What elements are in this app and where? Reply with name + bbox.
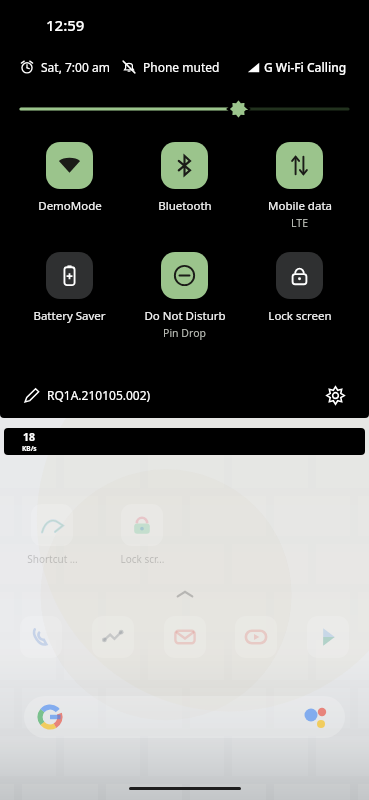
staticText: Phone muted [143,59,220,75]
button[interactable]: Lock screen [242,252,357,324]
button[interactable]: Brightness [21,96,348,122]
button[interactable]: Mobile data [242,142,357,230]
button[interactable]: Lock scr… [121,504,163,546]
staticText: 12:59 [46,15,85,35]
staticText: Do Not Disturb [144,308,226,324]
staticText: KB/s [22,444,37,453]
staticText: G Wi-Fi Calling [264,59,347,75]
button[interactable]: App [307,616,349,658]
staticText: Lock scr… [120,552,165,566]
button[interactable]: App [235,616,277,658]
staticText: Lock screen [268,308,332,324]
button[interactable]: Battery Saver [12,252,127,324]
button[interactable]: 18 [4,428,365,455]
staticText: 18 [23,430,36,444]
button[interactable]: Settings [321,381,349,409]
button[interactable]: Shortcut … [31,504,73,546]
button[interactable]: Edit tiles [18,382,44,408]
staticText: Pin Drop [163,326,206,340]
button[interactable]: DemoMode [12,142,127,214]
staticText: Shortcut … [27,552,78,566]
staticText: DemoMode [38,198,102,214]
staticText: Bluetooth [158,198,212,214]
button[interactable]: App [164,616,206,658]
staticText: RQ1A.210105.002) [47,387,151,403]
staticText: LTE [291,216,308,230]
staticText: Mobile data [268,198,332,214]
button[interactable]: Bluetooth [127,142,242,214]
button[interactable]: App [20,616,62,658]
staticText: Battery Saver [33,308,106,324]
button[interactable]: Google search [24,696,345,738]
button[interactable]: Do Not Disturb [127,252,242,340]
button[interactable]: App [92,616,134,658]
staticText: Sat, 7:00 am [41,59,110,75]
